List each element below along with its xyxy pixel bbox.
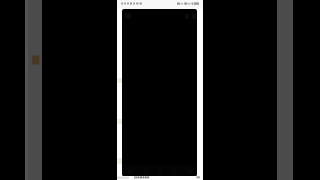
button[interactable]: Previous device [25,0,42,180]
button[interactable]: Profile [182,165,197,176]
button[interactable]: Home [122,165,137,176]
button[interactable]: Search [183,10,190,22]
button[interactable]: More options [190,10,197,22]
button[interactable]: Open navigation menu [122,10,134,22]
